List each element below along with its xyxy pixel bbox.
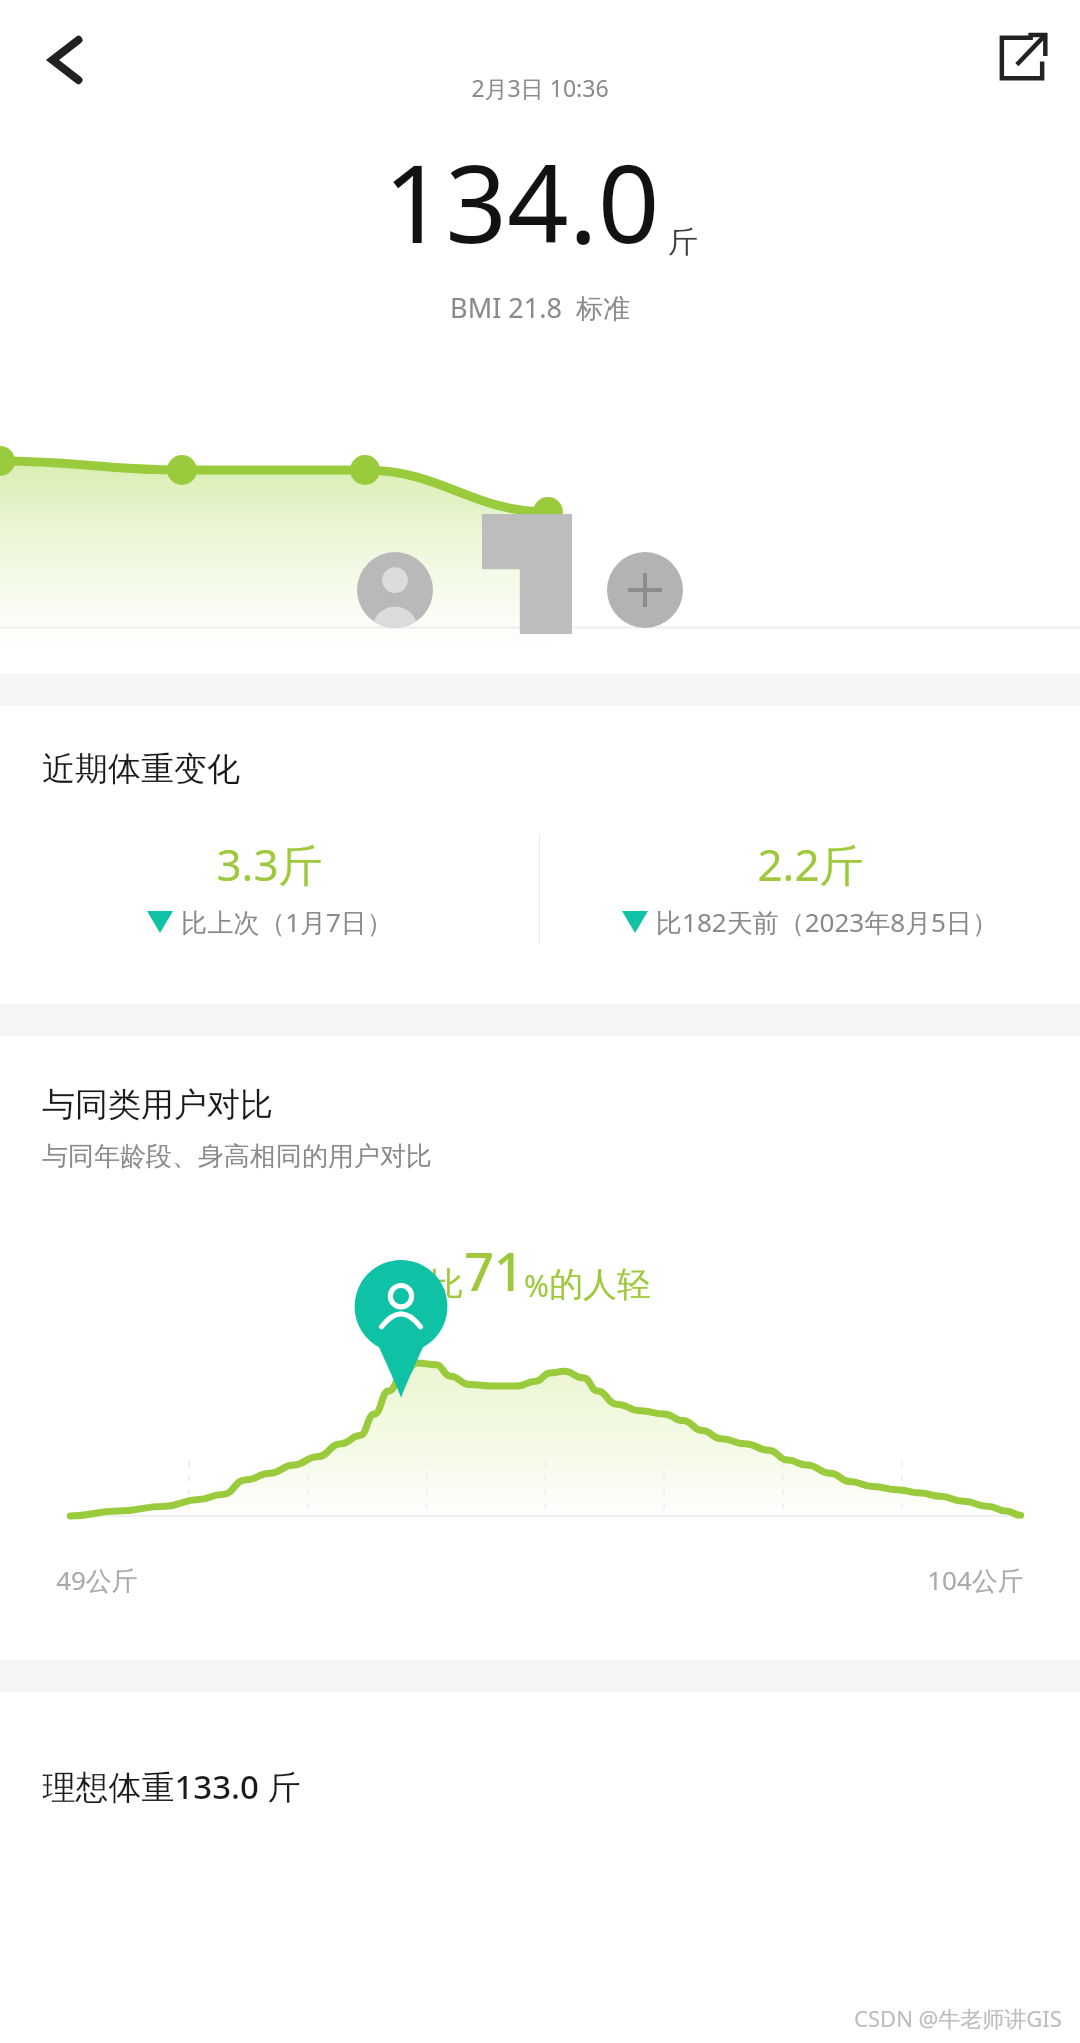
staticText: 2.2斤: [757, 834, 864, 894]
button[interactable]: 理想体重133.0 斤: [0, 1764, 1080, 1809]
staticText: 134.0: [383, 128, 660, 275]
staticText: 2月3日 10:36: [471, 72, 609, 103]
staticText: 49公斤: [56, 1562, 138, 1598]
staticText: %: [524, 1265, 549, 1306]
staticText: 104公斤: [927, 1562, 1024, 1598]
button[interactable]: Add: [607, 552, 683, 628]
staticText: 理想体重133.0 斤: [42, 1764, 301, 1809]
button[interactable]: Profile: [357, 552, 433, 628]
button[interactable]: Share: [986, 22, 1058, 94]
staticText: 的人轻: [549, 1263, 651, 1306]
staticText: BMI 21.8 标准: [450, 289, 630, 326]
staticText: 比182天前（2023年8月5日）: [656, 904, 998, 940]
staticText: 与同类用户对比: [42, 1084, 273, 1126]
staticText: 与同年龄段、身高相同的用户对比: [42, 1140, 432, 1173]
staticText: 71: [464, 1235, 524, 1306]
staticText: CSDN @牛老师讲GIS: [854, 2003, 1062, 2033]
staticText: 比上次（1月7日）: [181, 904, 393, 940]
button[interactable]: 3.3斤: [0, 834, 539, 940]
button[interactable]: Back: [18, 18, 102, 102]
staticText: 近期体重变化: [42, 748, 240, 790]
staticText: 3.3斤: [216, 834, 323, 894]
staticText: 比: [430, 1263, 464, 1306]
button[interactable]: 2.2斤: [540, 834, 1080, 940]
staticText: 斤: [668, 223, 698, 261]
